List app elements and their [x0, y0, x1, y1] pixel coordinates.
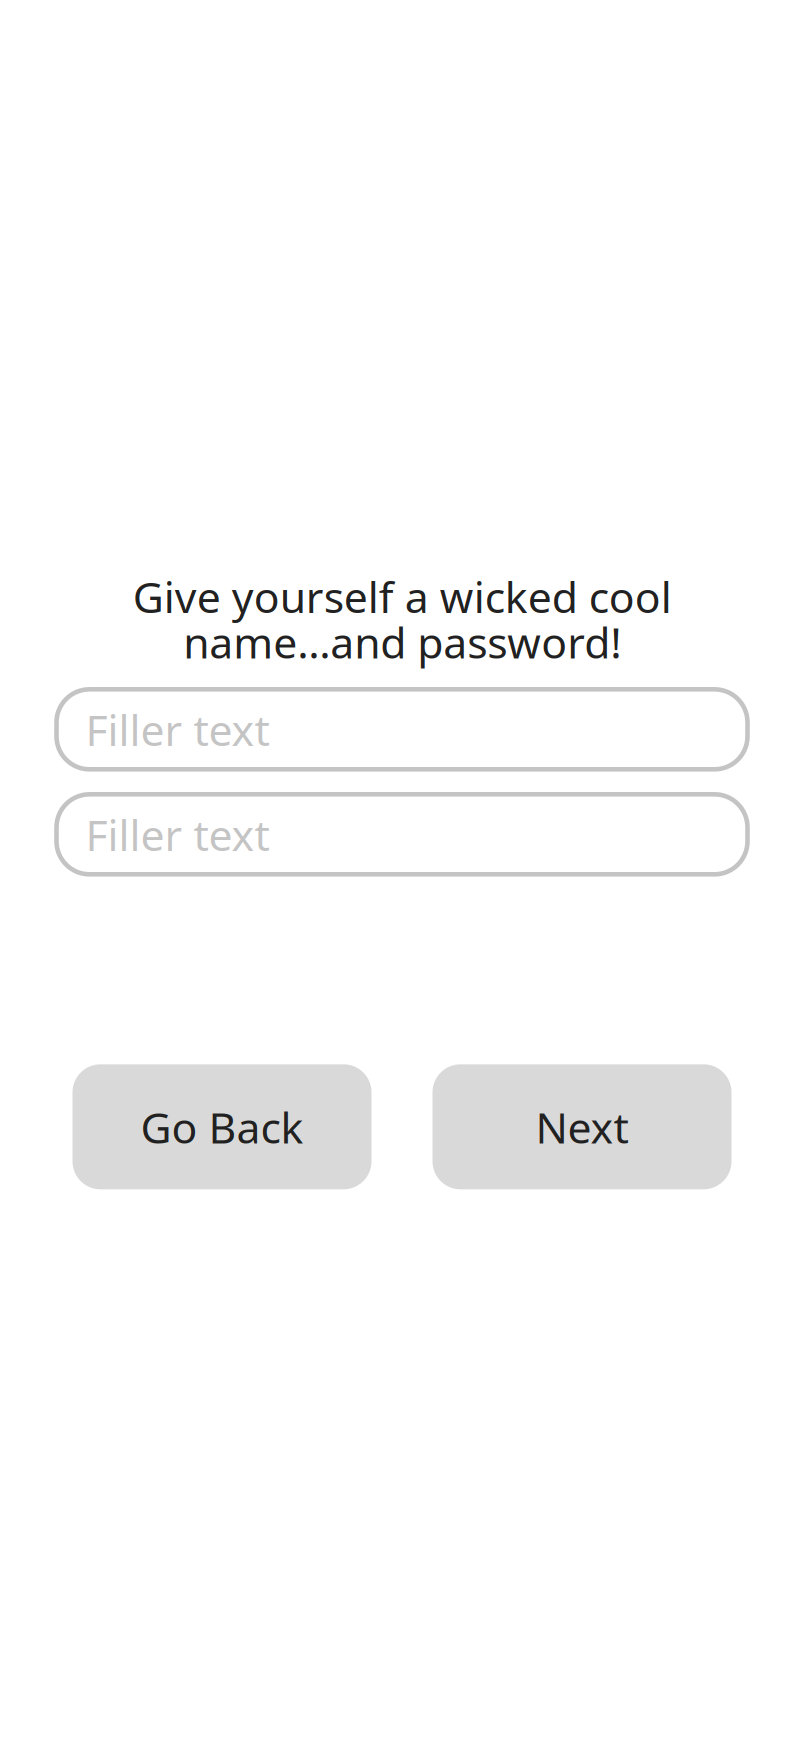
staticText: Filler text — [85, 701, 269, 758]
staticText: Go Back — [140, 1098, 303, 1155]
button[interactable]: Filler text — [56, 689, 747, 769]
staticText: Give yourself a wicked cool name...and p… — [132, 568, 671, 670]
staticText: Filler text — [85, 806, 269, 863]
button[interactable]: Next — [432, 1064, 731, 1189]
button[interactable]: Go Back — [72, 1064, 371, 1189]
button[interactable]: Filler text — [56, 794, 747, 874]
staticText: Next — [535, 1098, 628, 1155]
